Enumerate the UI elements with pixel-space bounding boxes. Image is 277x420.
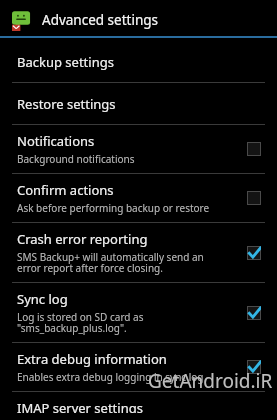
staticText: Sync log [17,290,68,308]
button[interactable]: Notifications [0,125,277,173]
staticText: Advanced settings [42,11,159,29]
button[interactable]: Restore settings [0,83,277,124]
staticText: SMS Backup+ will automatically send an e… [17,250,204,275]
staticText: IMAP server settings [17,399,143,413]
staticText: Crash error reporting [17,230,148,248]
button[interactable]: Crash error reporting [0,223,277,282]
staticText: Background notifications [17,152,135,166]
button[interactable]: Sync log [0,283,277,342]
button[interactable]: Extra debug information [0,343,277,391]
button[interactable]: Checked [241,240,267,266]
staticText: Backup settings [17,53,114,71]
staticText: Extra debug information [17,350,167,368]
staticText: Confirm actions [17,181,114,199]
button[interactable]: Checked [241,300,267,326]
button[interactable]: SMS Backup+ [0,6,277,34]
button[interactable]: Checked [241,354,267,380]
staticText: Ask before performing backup or restore [17,201,210,215]
staticText: Restore settings [17,95,116,113]
staticText: Enables extra debug logging in sync log [17,370,204,384]
button[interactable]: Unchecked [241,136,267,162]
button[interactable]: Unchecked [241,185,267,211]
staticText: Notifications [17,132,95,150]
staticText: GetAndroid.iR [148,368,273,394]
button[interactable]: Backup settings [0,41,277,82]
button[interactable]: Confirm actions [0,174,277,222]
staticText: Log is stored on SD card as "sms_backup_… [17,310,144,335]
other: SMS Backup+ [12,10,33,31]
button[interactable]: IMAP server settings [0,392,277,420]
